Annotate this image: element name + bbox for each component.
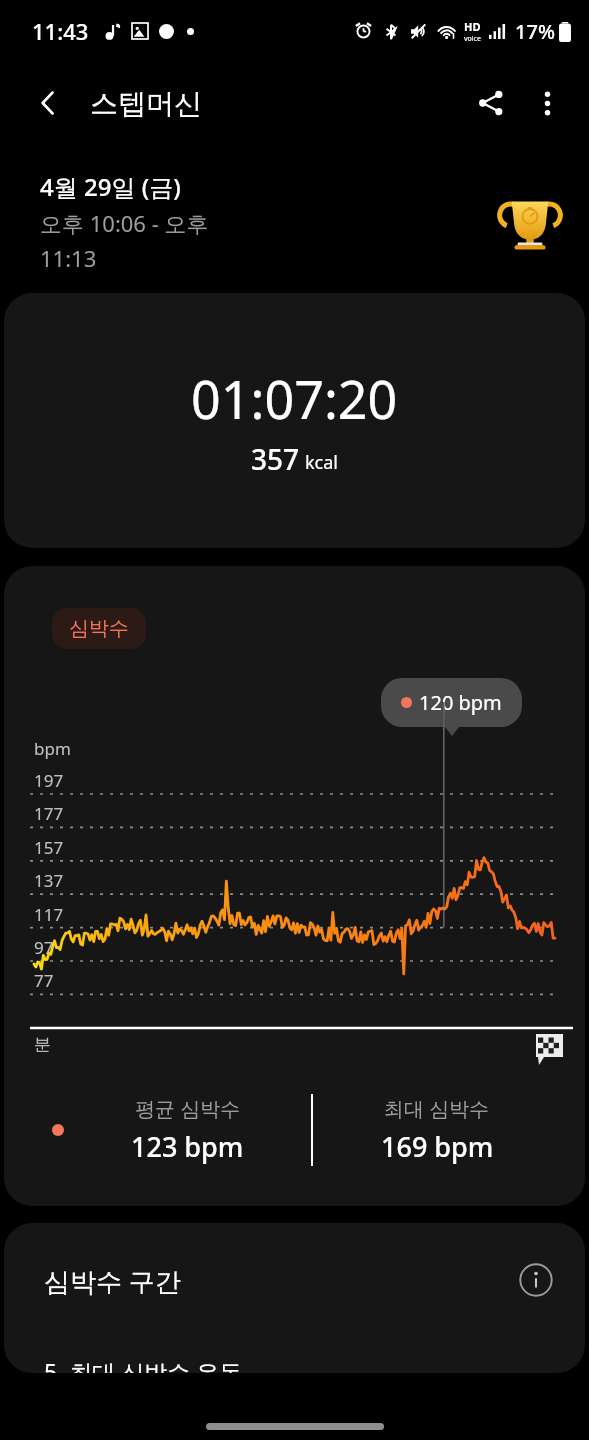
staticText: 169 bpm <box>381 1128 494 1165</box>
staticText: bpm <box>34 737 71 760</box>
button[interactable]: More options <box>519 75 575 131</box>
staticText: 120 bpm <box>419 689 502 716</box>
staticText: 01:07:20 <box>191 363 398 434</box>
button[interactable]: Information <box>511 1255 561 1305</box>
staticText: 평균 심박수 <box>135 1095 241 1122</box>
staticText: 4월 29일 (금) <box>40 170 181 203</box>
staticText: 최대 심박수 <box>384 1095 490 1122</box>
staticText: 123 bpm <box>131 1128 244 1165</box>
button[interactable]: 01:07:20 <box>4 293 585 548</box>
staticText: 17% <box>515 18 555 45</box>
button[interactable]: Share <box>463 75 519 131</box>
staticText: 357 <box>251 440 300 478</box>
staticText: 오후 10:06 - 오후 11:13 <box>40 208 209 273</box>
staticText: 심박수 구간 <box>44 1263 181 1299</box>
staticText: 5. 최대 심박수 운동 <box>44 1356 243 1373</box>
staticText: 97 <box>34 936 54 959</box>
staticText: 197 <box>34 769 64 792</box>
staticText: 117 <box>34 903 64 926</box>
staticText: 11:43 <box>32 16 89 46</box>
staticText: 심박수 <box>69 616 129 641</box>
staticText: kcal <box>305 450 338 475</box>
staticText: voice <box>464 34 481 44</box>
staticText: 137 <box>34 869 64 892</box>
staticText: 157 <box>34 836 64 859</box>
button[interactable]: 심박수 <box>52 608 146 649</box>
button[interactable]: 심박수 구간 <box>4 1223 585 1373</box>
staticText: 177 <box>34 802 64 825</box>
staticText: HD <box>464 19 481 34</box>
staticText: 스텝머신 <box>90 86 202 121</box>
staticText: 77 <box>34 969 54 992</box>
button[interactable]: 120 bpm <box>381 678 522 727</box>
staticText: 분 <box>34 1034 51 1055</box>
button[interactable]: Back <box>20 75 76 131</box>
